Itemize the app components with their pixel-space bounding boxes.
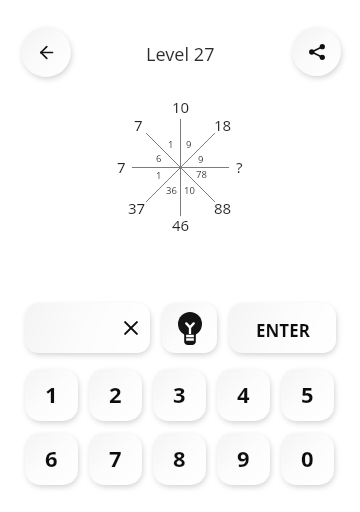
button[interactable]: Back xyxy=(21,27,71,77)
staticText: 4 xyxy=(237,379,250,409)
button[interactable]: 9 xyxy=(217,433,270,485)
staticText: 1 xyxy=(45,379,58,409)
staticText: 7 xyxy=(117,157,126,177)
button[interactable]: 6 xyxy=(25,433,78,485)
staticText: 1 xyxy=(156,169,162,182)
staticText: 8 xyxy=(173,443,186,473)
staticText: 46 xyxy=(172,215,190,235)
staticText: 37 xyxy=(128,198,146,218)
staticText: 9 xyxy=(198,153,204,166)
button[interactable]: 3 xyxy=(153,369,206,421)
staticText: 10 xyxy=(184,184,195,197)
staticText: 6 xyxy=(45,443,58,473)
staticText: 6 xyxy=(156,152,162,165)
button[interactable]: 7 xyxy=(89,433,142,485)
staticText: 10 xyxy=(172,97,190,117)
staticText: 2 xyxy=(109,379,122,409)
staticText: 88 xyxy=(214,198,232,218)
staticText: 7 xyxy=(134,115,143,135)
staticText: ? xyxy=(236,157,243,177)
staticText: 36 xyxy=(166,184,177,197)
staticText: Level 27 xyxy=(146,42,215,67)
button[interactable]: 2 xyxy=(89,369,142,421)
button[interactable]: Share xyxy=(292,27,341,76)
button[interactable]: ENTER xyxy=(229,303,336,353)
staticText: 9 xyxy=(237,443,250,473)
button[interactable]: 1 xyxy=(25,369,78,421)
staticText: 3 xyxy=(173,379,186,409)
button[interactable]: 8 xyxy=(153,433,206,485)
staticText: 1 xyxy=(168,138,174,151)
button[interactable]: 5 xyxy=(281,369,334,421)
staticText: 5 xyxy=(301,379,314,409)
button[interactable]: 4 xyxy=(217,369,270,421)
staticText: 0 xyxy=(301,443,314,473)
staticText: 78 xyxy=(196,168,207,181)
button[interactable]: 0 xyxy=(281,433,334,485)
staticText: 18 xyxy=(214,115,232,135)
staticText: 7 xyxy=(109,443,122,473)
staticText: ENTER xyxy=(256,319,310,342)
button[interactable]: Clear xyxy=(25,303,150,353)
staticText: 9 xyxy=(186,138,192,151)
button[interactable]: Hint xyxy=(162,303,217,353)
